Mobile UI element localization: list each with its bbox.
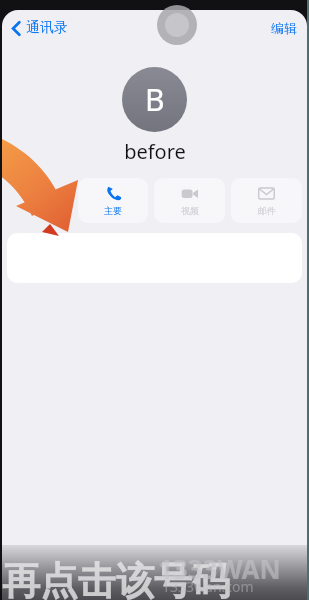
button[interactable]: 编辑 xyxy=(267,16,301,40)
button[interactable]: Call xyxy=(78,178,148,223)
button[interactable]: Send mail xyxy=(231,178,302,223)
staticText: 通讯录 xyxy=(26,19,68,37)
button[interactable] xyxy=(7,233,302,283)
staticText: 主要 xyxy=(104,205,122,216)
button[interactable]: Contact photo xyxy=(122,67,187,132)
button[interactable]: 通讯录 xyxy=(8,15,72,41)
button[interactable]: Video call xyxy=(154,178,225,223)
staticText: before xyxy=(124,138,186,165)
staticText: B xyxy=(145,79,165,120)
staticText: 编辑 xyxy=(271,20,297,36)
other: Call xyxy=(105,185,122,202)
staticText: 1333wan.com xyxy=(162,577,254,596)
staticText: 再点击该号码 xyxy=(2,557,230,600)
staticText: 1333WAN xyxy=(158,551,281,586)
staticText: 邮件 xyxy=(258,205,276,216)
other: Send mail xyxy=(258,185,275,202)
other: Video call xyxy=(181,185,198,202)
staticText: 视频 xyxy=(181,205,199,216)
